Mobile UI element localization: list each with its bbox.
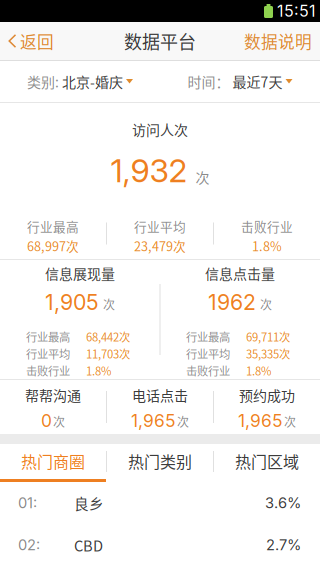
staticText: 击败行业 [186, 362, 230, 379]
staticText: 1.8% [246, 362, 271, 379]
staticText: 35,335次 [246, 345, 290, 362]
button[interactable]: 返回 [0, 22, 64, 60]
staticText: 次 [195, 167, 209, 187]
staticText: 0 [41, 410, 52, 431]
staticText: 行业最高 [26, 328, 70, 345]
staticText: 1,905 [45, 289, 99, 315]
staticText: 11,703次 [86, 345, 130, 362]
staticText: 01: [18, 494, 37, 512]
staticText: 帮帮沟通 [25, 385, 81, 405]
staticText: 1962 [208, 289, 256, 315]
staticText: 1.8% [252, 236, 282, 255]
staticText: 次 [260, 296, 272, 313]
staticText: 23,479次 [134, 236, 186, 255]
staticText: 热门区域 [235, 449, 299, 473]
staticText: 1.8% [86, 362, 111, 379]
staticText: 北京-婚庆 [59, 71, 126, 92]
staticText: 信息展现量 [45, 263, 115, 283]
staticText: 访问人次 [132, 119, 188, 139]
button[interactable]: 02: [0, 524, 320, 566]
staticText: 行业最高 [186, 328, 230, 345]
staticText: 良乡 [74, 492, 104, 514]
button[interactable]: 电话点击 [107, 380, 213, 434]
button[interactable]: 数据说明 [234, 22, 320, 60]
staticText: 次 [284, 413, 296, 430]
staticText: 次 [177, 413, 189, 430]
staticText: 68,442次 [86, 328, 130, 345]
staticText: 行业平均 [26, 345, 70, 362]
staticText: 数据说明 [244, 29, 312, 53]
staticText: 行业平均 [134, 217, 186, 235]
staticText: 02: [18, 536, 40, 554]
staticText: 电话点击 [132, 385, 188, 405]
staticText: 击败行业 [26, 362, 70, 379]
staticText: 行业平均 [186, 345, 230, 362]
staticText: 信息点击量 [205, 263, 275, 283]
button[interactable]: 预约成功 [214, 380, 320, 434]
staticText: 返回 [20, 29, 54, 53]
staticText: 最近7天 [229, 71, 285, 92]
staticText: 击败行业 [241, 217, 293, 235]
staticText: 1,965 [238, 410, 283, 431]
staticText: 3.6% [265, 494, 301, 512]
button[interactable]: 01: [0, 482, 320, 524]
staticText: 1,932 [110, 151, 187, 190]
staticText: 热门商圈 [21, 449, 85, 473]
staticText: 2.7% [266, 536, 301, 554]
staticText: CBD [74, 534, 103, 556]
staticText: 15:51 [277, 1, 316, 21]
button[interactable]: 时间： [160, 61, 320, 102]
staticText: 1,965 [131, 410, 176, 431]
button[interactable]: 热门商圈 [0, 444, 106, 482]
staticText: 次 [53, 413, 65, 430]
staticText: 次 [103, 296, 115, 313]
button[interactable]: 热门类别 [107, 444, 213, 482]
staticText: 预约成功 [239, 385, 295, 405]
button[interactable]: 热门区域 [214, 444, 320, 482]
staticText: 69,711次 [246, 328, 290, 345]
staticText: 68,997次 [27, 236, 79, 255]
staticText: 类别: [27, 71, 59, 92]
button[interactable]: 帮帮沟通 [0, 380, 106, 434]
button[interactable]: 类别: [0, 61, 160, 102]
staticText: 热门类别 [128, 449, 192, 473]
staticText: 时间： [187, 71, 229, 92]
staticText: 数据平台 [124, 28, 196, 54]
staticText: 行业最高 [27, 217, 79, 235]
